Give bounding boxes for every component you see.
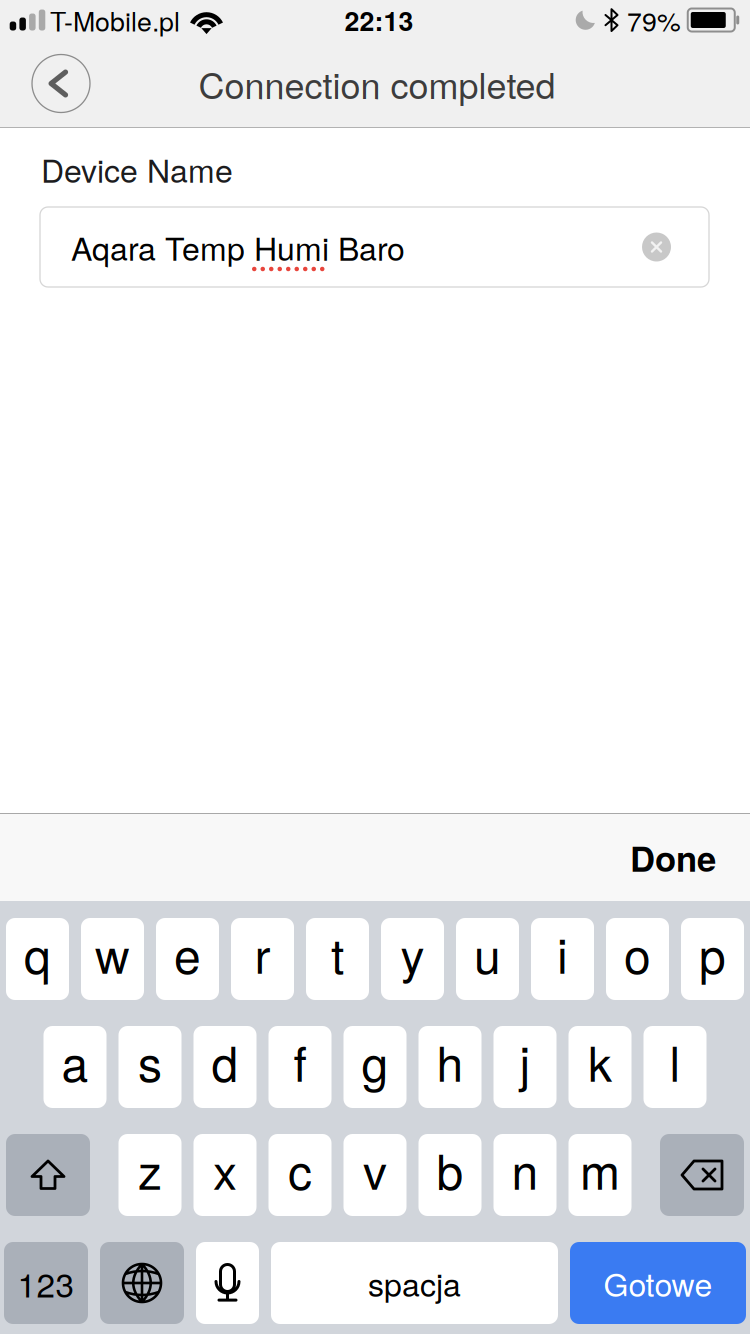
- button[interactable]: u: [456, 918, 519, 1000]
- button[interactable]: m: [568, 1134, 631, 1216]
- staticText: y: [400, 919, 424, 987]
- staticText: g: [361, 1027, 388, 1095]
- staticText: i: [557, 919, 568, 987]
- button[interactable]: k: [568, 1026, 631, 1108]
- button[interactable]: Numbers: [4, 1242, 88, 1324]
- staticText: Device Name: [41, 146, 233, 192]
- button[interactable]: z: [118, 1134, 181, 1216]
- staticText: u: [474, 919, 501, 987]
- staticText: spacja: [368, 1260, 461, 1306]
- button[interactable]: g: [343, 1026, 406, 1108]
- staticText: l: [669, 1027, 680, 1095]
- staticText: 79%: [627, 1, 681, 39]
- button[interactable]: b: [418, 1134, 481, 1216]
- staticText: v: [363, 1135, 387, 1203]
- staticText: j: [519, 1027, 530, 1095]
- button[interactable]: o: [606, 918, 669, 1000]
- button[interactable]: c: [268, 1134, 331, 1216]
- button[interactable]: s: [118, 1026, 181, 1108]
- button[interactable]: a: [43, 1026, 106, 1108]
- button[interactable]: Clear text: [642, 232, 671, 261]
- staticText: b: [436, 1135, 463, 1203]
- button[interactable]: n: [493, 1134, 556, 1216]
- button[interactable]: f: [268, 1026, 331, 1108]
- staticText: z: [138, 1135, 162, 1203]
- button[interactable]: i: [531, 918, 594, 1000]
- button[interactable]: Back: [26, 48, 96, 118]
- button[interactable]: Next keyboard: [100, 1242, 184, 1324]
- button[interactable]: t: [306, 918, 369, 1000]
- staticText: h: [436, 1027, 463, 1095]
- staticText: Connection completed: [198, 58, 555, 109]
- staticText: x: [213, 1135, 237, 1203]
- staticText: q: [24, 919, 51, 987]
- staticText: Gotowe: [603, 1260, 712, 1306]
- button[interactable]: v: [343, 1134, 406, 1216]
- button[interactable]: y: [381, 918, 444, 1000]
- staticText: e: [174, 919, 201, 987]
- staticText: Aqara Temp Humi Baro: [71, 224, 405, 270]
- staticText: r: [254, 919, 270, 987]
- staticText: 22:13: [344, 1, 413, 39]
- staticText: s: [138, 1027, 162, 1095]
- staticText: m: [580, 1135, 620, 1203]
- button[interactable]: q: [6, 918, 69, 1000]
- button[interactable]: Shift: [6, 1134, 90, 1216]
- button[interactable]: w: [81, 918, 144, 1000]
- staticText: w: [95, 919, 130, 987]
- staticText: f: [293, 1027, 306, 1095]
- button[interactable]: d: [193, 1026, 256, 1108]
- button[interactable]: Delete: [660, 1134, 744, 1216]
- staticText: t: [331, 919, 344, 987]
- button[interactable]: x: [193, 1134, 256, 1216]
- button[interactable]: l: [643, 1026, 706, 1108]
- staticText: k: [588, 1027, 612, 1095]
- staticText: Done: [630, 833, 716, 882]
- button[interactable]: j: [493, 1026, 556, 1108]
- staticText: d: [211, 1027, 238, 1095]
- staticText: T-Mobile.pl: [50, 1, 180, 39]
- staticText: c: [288, 1135, 312, 1203]
- button[interactable]: Done: [610, 815, 736, 900]
- button[interactable]: r: [231, 918, 294, 1000]
- staticText: a: [61, 1027, 88, 1095]
- button[interactable]: Gotowe: [570, 1242, 746, 1324]
- staticText: o: [624, 919, 651, 987]
- staticText: p: [699, 919, 726, 987]
- button[interactable]: h: [418, 1026, 481, 1108]
- button[interactable]: spacja: [271, 1242, 558, 1324]
- button[interactable]: p: [681, 918, 744, 1000]
- staticText: n: [511, 1135, 538, 1203]
- button[interactable]: e: [156, 918, 219, 1000]
- staticText: 123: [17, 1259, 74, 1307]
- button[interactable]: Dictation: [196, 1242, 259, 1324]
